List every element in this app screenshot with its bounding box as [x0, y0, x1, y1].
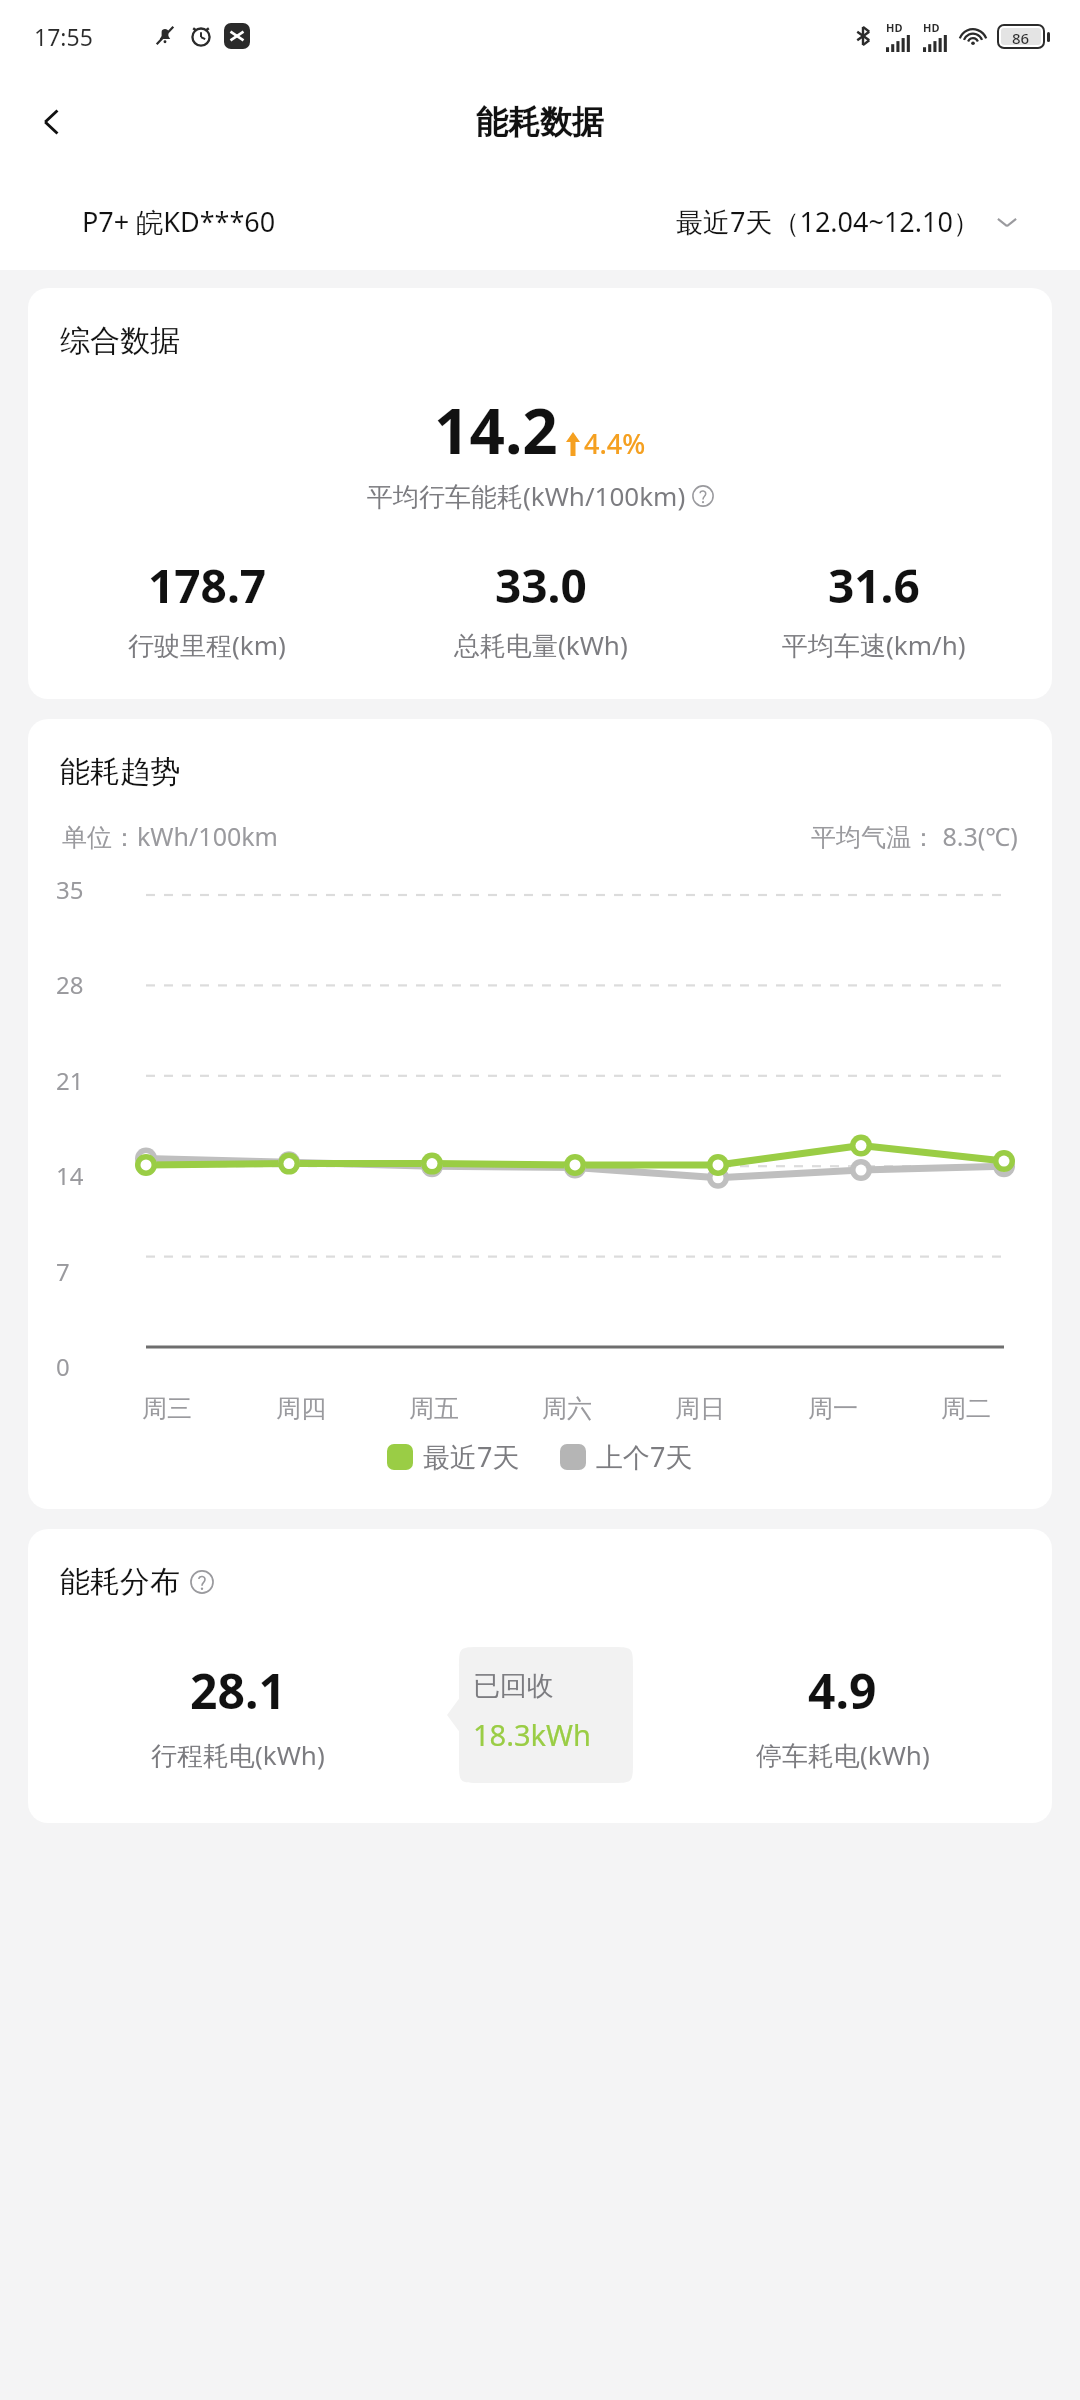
staticText: 停车耗电(kWh) — [756, 1737, 930, 1773]
staticText: 最近7天 — [423, 1438, 520, 1475]
staticText: 0 — [56, 1350, 70, 1383]
staticText: 周五 — [409, 1393, 459, 1424]
staticText: 31.6 — [828, 554, 920, 617]
staticText: 能耗趋势 — [60, 753, 180, 791]
staticText: 行驶里程(km) — [128, 627, 286, 663]
staticText: 最近7天（12.04~12.10） — [676, 203, 980, 240]
button[interactable]: 178.7 — [40, 554, 374, 663]
staticText: 周日 — [675, 1393, 725, 1424]
button[interactable]: 上个7天 — [560, 1438, 693, 1475]
staticText: 能耗分布 — [60, 1563, 180, 1601]
button[interactable]: 能耗分布 — [28, 1529, 1052, 1823]
staticText: 21 — [56, 1064, 84, 1097]
staticText: 平均行车能耗(kWh/100km) — [367, 478, 686, 514]
button[interactable]: Back — [20, 90, 84, 154]
staticText: 4.4% — [584, 425, 646, 462]
staticText: 28.1 — [190, 1658, 286, 1723]
staticText: 周六 — [542, 1393, 592, 1424]
staticText: 周三 — [142, 1393, 192, 1424]
staticText: 14 — [56, 1159, 84, 1192]
staticText: 总耗电量(kWh) — [454, 627, 628, 663]
button[interactable]: 33.0 — [374, 554, 707, 663]
staticText: HD — [886, 20, 903, 35]
button[interactable]: 最近7天（12.04~12.10） — [676, 203, 1020, 240]
staticText: 周一 — [808, 1393, 858, 1424]
staticText: 178.7 — [148, 554, 267, 617]
staticText: 33.0 — [495, 554, 587, 617]
staticText: 综合数据 — [60, 322, 180, 360]
staticText: 行程耗电(kWh) — [151, 1737, 325, 1773]
staticText: 平均气温： 8.3(℃) — [811, 819, 1018, 853]
staticText: 能耗数据 — [476, 102, 604, 142]
button[interactable]: 综合数据 — [28, 288, 1052, 699]
staticText: HD — [923, 20, 940, 35]
staticText: 17:55 — [34, 21, 93, 52]
staticText: 28 — [56, 968, 84, 1001]
button[interactable]: 28.1 — [28, 1658, 447, 1773]
button[interactable]: 31.6 — [707, 554, 1040, 663]
button[interactable]: P7+ 皖KD***60 — [82, 203, 276, 240]
staticText: 周二 — [941, 1393, 991, 1424]
staticText: 35 — [56, 873, 84, 906]
staticText: 已回收 — [473, 1669, 554, 1703]
staticText: 平均车速(km/h) — [782, 627, 966, 663]
button[interactable]: 4.9 — [633, 1658, 1052, 1773]
staticText: 14.2 — [434, 388, 558, 472]
button[interactable]: 能耗趋势 — [28, 719, 1052, 1509]
staticText: 7 — [56, 1255, 70, 1288]
staticText: 4.9 — [808, 1658, 877, 1723]
staticText: 18.3kWh — [473, 1715, 591, 1754]
staticText: 周四 — [276, 1393, 326, 1424]
staticText: 单位：kWh/100km — [62, 819, 278, 853]
staticText: 86 — [1012, 28, 1030, 45]
button[interactable]: 最近7天 — [387, 1438, 520, 1475]
staticText: 上个7天 — [596, 1438, 693, 1475]
